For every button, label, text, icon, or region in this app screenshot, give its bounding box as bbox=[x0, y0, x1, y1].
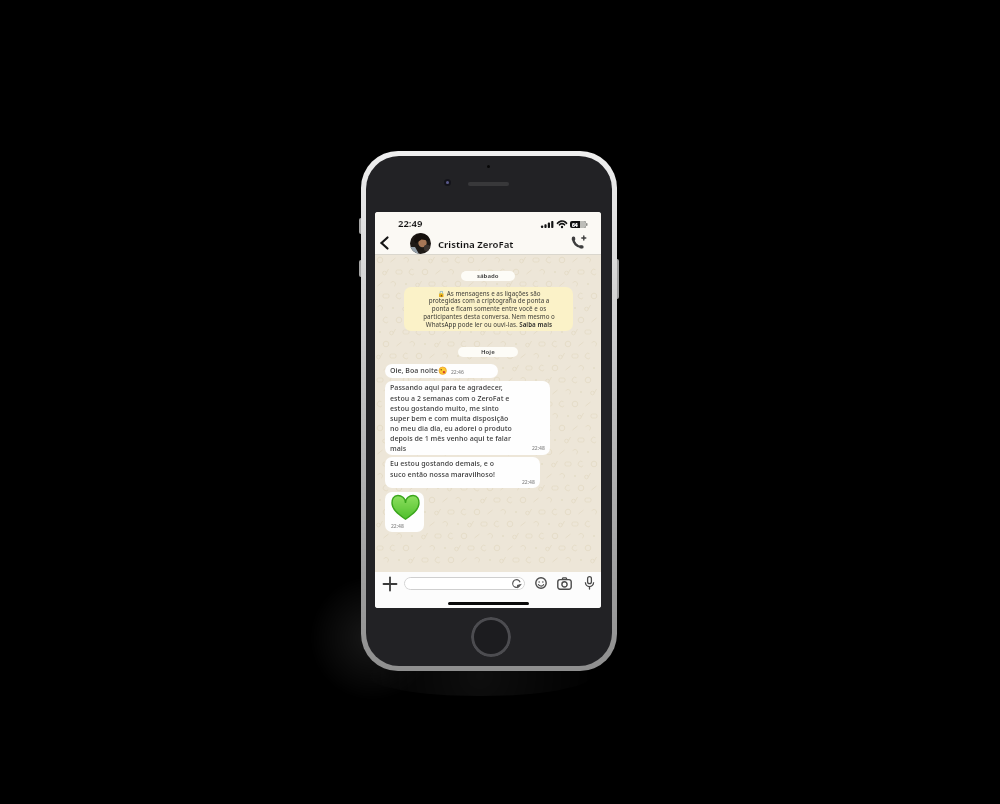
staticText: 22:48 bbox=[522, 479, 535, 486]
staticText: Hoje bbox=[481, 348, 495, 356]
staticText: sábado bbox=[477, 272, 499, 280]
staticText: 🔒 As mensagens e as ligações são protegi… bbox=[423, 289, 555, 329]
staticText: 22:49 bbox=[398, 217, 423, 230]
button[interactable] bbox=[377, 235, 393, 251]
button[interactable] bbox=[404, 577, 525, 590]
staticText: 22:48 bbox=[532, 445, 545, 452]
button[interactable] bbox=[571, 235, 588, 251]
staticText: 22:46 bbox=[451, 369, 464, 376]
button[interactable] bbox=[535, 577, 547, 589]
staticText: 64 bbox=[572, 222, 578, 228]
staticText: Eu estou gostando demais, e o suco então… bbox=[390, 459, 495, 479]
button[interactable] bbox=[383, 577, 397, 591]
staticText: Passando aqui para te agradecer, estou a… bbox=[390, 383, 512, 453]
button[interactable] bbox=[471, 617, 511, 657]
staticText: Cristina ZeroFat bbox=[438, 238, 514, 251]
button[interactable] bbox=[557, 577, 572, 590]
staticText: Oie, Boa noite bbox=[390, 366, 438, 376]
button[interactable]: 🔒 As mensagens e as ligações são protegi… bbox=[404, 287, 573, 331]
button[interactable] bbox=[584, 576, 594, 591]
staticText: 22:48 bbox=[391, 523, 404, 530]
button[interactable] bbox=[410, 233, 431, 254]
